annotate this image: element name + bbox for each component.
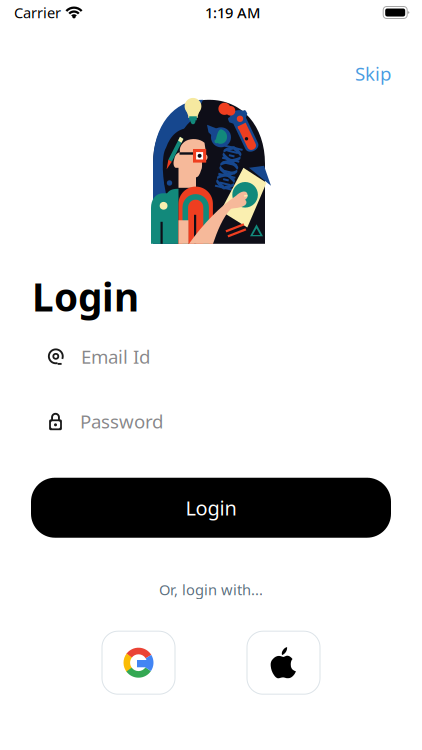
staticText: 1:19 AM [205, 3, 260, 22]
staticText: Email Id [81, 344, 150, 369]
staticText: Login [185, 494, 236, 521]
button[interactable]: Skip [339, 52, 407, 95]
staticText: Login [32, 271, 139, 322]
button[interactable]: Sign in with Google [102, 631, 175, 694]
staticText: Skip [355, 61, 391, 86]
button[interactable]: Login [31, 478, 391, 538]
staticText: Or, login with... [159, 580, 263, 599]
staticText: Carrier [14, 3, 61, 22]
button[interactable]: Sign in with Apple [247, 631, 320, 694]
staticText: Password [80, 409, 163, 434]
